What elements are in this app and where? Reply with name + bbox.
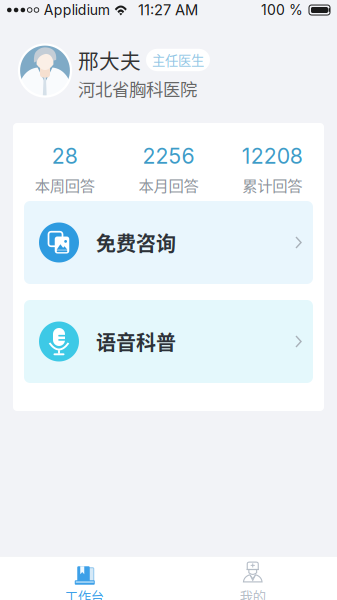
- staticText: 28: [52, 143, 78, 169]
- button[interactable]: 语音科普: [24, 300, 313, 383]
- staticText: 100 %: [261, 1, 303, 18]
- staticText: 主任医生: [152, 50, 204, 70]
- staticText: 我的: [240, 586, 266, 600]
- staticText: 工作台: [65, 586, 104, 600]
- staticText: 邢大夫: [78, 45, 141, 75]
- staticText: 语音科普: [96, 327, 176, 356]
- staticText: 免费咨询: [96, 228, 176, 257]
- staticText: Applidium: [44, 1, 110, 18]
- staticText: 河北省胸科医院: [78, 76, 197, 101]
- button[interactable]: 免费咨询: [24, 201, 313, 284]
- staticText: 11:27 AM: [138, 1, 198, 19]
- staticText: 12208: [242, 143, 303, 169]
- staticText: 本周回答: [35, 174, 95, 196]
- button[interactable]: 工作台: [0, 556, 168, 600]
- button[interactable]: 我的: [168, 556, 337, 600]
- staticText: 本月回答: [138, 174, 198, 196]
- staticText: 2256: [142, 143, 194, 169]
- staticText: 累计回答: [242, 174, 302, 196]
